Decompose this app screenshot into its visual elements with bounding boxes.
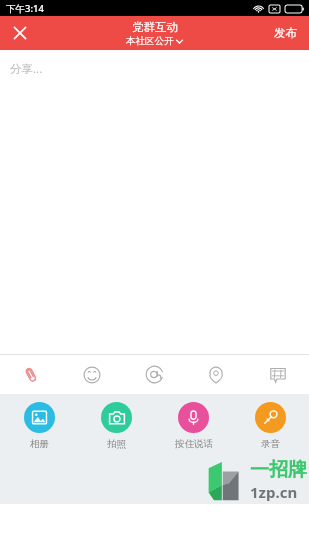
- staticText: 发布: [274, 26, 297, 40]
- button[interactable]: 关闭: [0, 16, 40, 50]
- button[interactable]: 录音: [232, 402, 309, 450]
- staticText: 相册: [30, 438, 49, 450]
- staticText: 一招牌: [250, 458, 307, 482]
- staticText: 下午3:14: [6, 2, 44, 15]
- staticText: 1zp.cn: [250, 482, 298, 502]
- staticText: 录音: [261, 438, 280, 450]
- staticText: 拍照: [107, 438, 126, 450]
- button[interactable]: 添加附件: [0, 355, 61, 394]
- button[interactable]: 提及: [123, 355, 185, 394]
- button[interactable]: 按住说话: [155, 402, 232, 450]
- button[interactable]: 话题: [247, 355, 309, 394]
- button[interactable]: 相册: [0, 402, 78, 450]
- staticText: 党群互动: [132, 20, 178, 34]
- staticText: 按住说话: [175, 438, 213, 450]
- staticText: 本社区公开: [126, 35, 174, 47]
- button[interactable]: 拍照: [78, 402, 155, 450]
- button[interactable]: 位置: [185, 355, 247, 394]
- button[interactable]: 表情: [61, 355, 123, 394]
- staticText: 分享...: [10, 61, 43, 77]
- button[interactable]: 发布: [262, 16, 309, 50]
- button[interactable]: 党群互动: [126, 20, 183, 47]
